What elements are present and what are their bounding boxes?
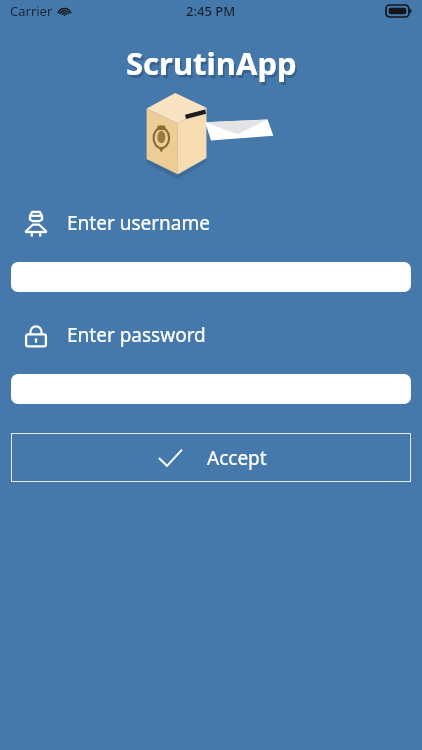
staticText: Enter username — [67, 210, 210, 236]
staticText: 2:45 PM — [186, 2, 236, 20]
other: Password — [21, 320, 51, 350]
staticText: ScrutinApp — [126, 42, 297, 84]
button[interactable]: Accept — [11, 433, 411, 482]
staticText: Carrier — [10, 2, 53, 20]
button[interactable]: Username input — [11, 262, 411, 292]
button[interactable]: Password input — [11, 374, 411, 404]
staticText: ScrutinApp — [128, 45, 299, 87]
other: User — [21, 208, 51, 238]
staticText: Enter password — [67, 322, 206, 348]
staticText: Accept — [207, 445, 267, 471]
